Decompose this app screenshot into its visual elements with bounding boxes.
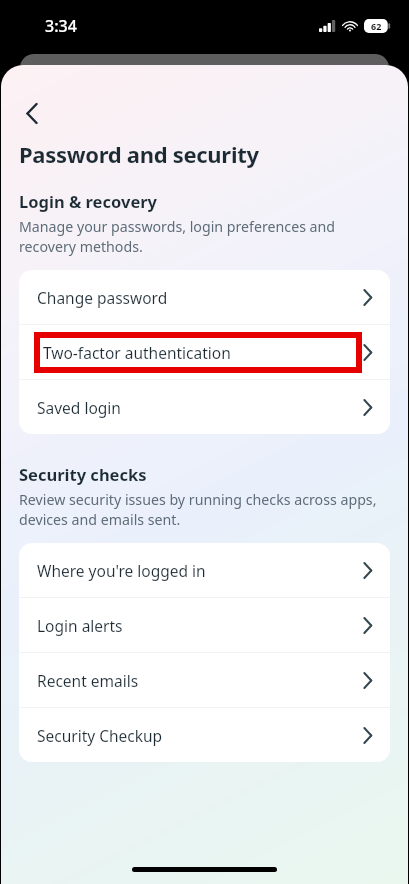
staticText: Saved login xyxy=(37,397,121,418)
staticText: 3:34 xyxy=(45,15,77,37)
button[interactable]: Back xyxy=(10,91,54,135)
staticText: Change password xyxy=(37,287,168,308)
button[interactable]: Recent emails xyxy=(19,653,390,707)
staticText: Recent emails xyxy=(37,670,139,691)
staticText: Login alerts xyxy=(37,615,123,636)
staticText: Login & recovery xyxy=(19,190,158,212)
button[interactable]: Where you're logged in xyxy=(19,543,390,597)
button[interactable]: Two-factor authentication xyxy=(19,325,390,379)
staticText: Where you're logged in xyxy=(37,560,206,581)
staticText: Security Checkup xyxy=(37,725,163,746)
staticText: Manage your passwords, login preferences… xyxy=(19,217,388,256)
button[interactable]: Security Checkup xyxy=(19,708,390,762)
button[interactable]: Change password xyxy=(19,270,390,324)
staticText: Two-factor authentication xyxy=(43,342,231,363)
staticText: Review security issues by running checks… xyxy=(19,490,388,529)
staticText: Security checks xyxy=(19,463,147,485)
staticText: 62 xyxy=(371,20,382,32)
staticText: Password and security xyxy=(19,139,259,169)
button[interactable]: Saved login xyxy=(19,380,390,434)
button[interactable]: Login alerts xyxy=(19,598,390,652)
